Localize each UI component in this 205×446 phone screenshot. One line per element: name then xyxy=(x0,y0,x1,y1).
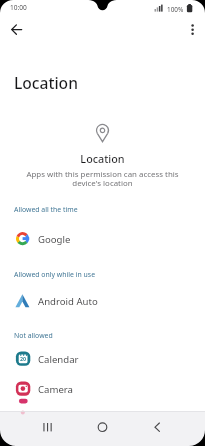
staticText: Allowed only while in use xyxy=(14,270,96,279)
staticText: 100% xyxy=(167,5,184,14)
staticText: Camera xyxy=(38,383,73,396)
staticText: 10:00 xyxy=(10,3,27,12)
staticText: Location xyxy=(0,151,205,166)
staticText: Android Auto xyxy=(38,295,98,308)
staticText: Calendar xyxy=(38,353,79,366)
staticText: Google xyxy=(38,233,71,246)
staticText: 20 xyxy=(20,355,27,362)
staticText: Location xyxy=(14,72,78,93)
staticText: Apps with this permission can access thi… xyxy=(0,169,205,189)
staticText: Not allowed xyxy=(14,331,53,340)
staticText: Allowed all the time xyxy=(14,205,78,214)
